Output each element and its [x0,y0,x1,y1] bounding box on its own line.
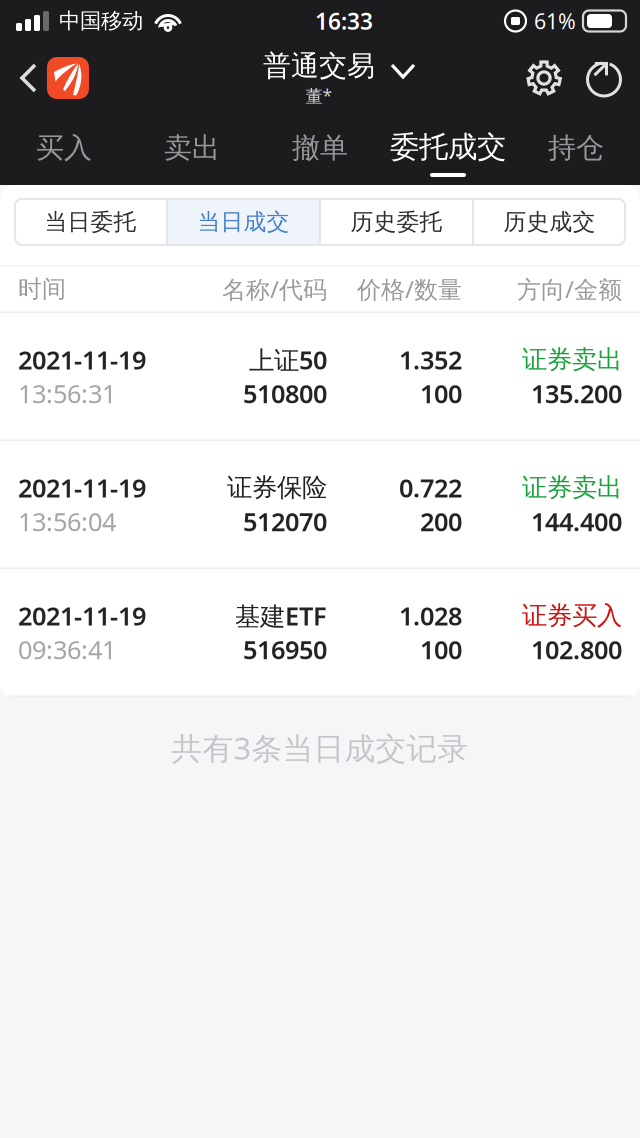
staticText: 当日成交 [197,208,289,236]
staticText: 2021-11-19 [18,599,146,632]
button[interactable]: 2021-11-19 [0,441,640,567]
button[interactable]: 2021-11-19 [0,569,640,695]
staticText: 中国移动 [59,8,143,34]
staticText: 100 [420,376,462,410]
staticText: 上证50 [249,343,327,376]
staticText: 基建ETF [235,599,327,632]
button[interactable]: 历史成交 [474,199,625,245]
button[interactable]: Back [0,42,99,114]
button[interactable]: 2021-11-19 [0,313,640,439]
staticText: 名称/代码 [222,273,327,305]
staticText: 撤单 [292,131,348,165]
staticText: 2021-11-19 [18,471,146,504]
staticText: 当日委托 [44,208,136,236]
staticText: 历史委托 [350,208,442,236]
staticText: 09:36:41 [18,632,116,666]
button[interactable]: 委托成交 [384,114,512,185]
staticText: 1.028 [399,599,462,632]
button[interactable]: Refresh [585,58,623,98]
staticText: 512070 [243,504,327,538]
staticText: 共有3条当日成交记录 [171,727,468,768]
staticText: 证券卖出 [522,472,622,503]
staticText: 时间 [18,274,66,304]
staticText: 方向/金额 [517,273,622,305]
staticText: 证券买入 [522,600,622,631]
staticText: 持仓 [548,131,604,165]
button[interactable]: 当日委托 [15,199,166,245]
button[interactable]: 普通交易 [235,42,405,114]
button[interactable]: 持仓 [512,114,640,185]
staticText: 1.352 [399,343,462,376]
button[interactable]: 卖出 [128,114,256,185]
button[interactable]: 历史委托 [321,199,472,245]
staticText: 13:56:04 [18,504,116,538]
button[interactable]: 当日成交 [168,199,319,245]
staticText: 61% [534,7,576,35]
staticText: 200 [420,504,462,538]
staticText: 510800 [243,376,327,410]
staticText: 0.722 [399,471,462,504]
staticText: 普通交易 [263,49,375,83]
staticText: 516950 [243,632,327,666]
staticText: 证券卖出 [522,344,622,375]
staticText: 董* [305,84,332,107]
staticText: 144.400 [531,504,622,538]
staticText: 16:33 [315,6,373,36]
staticText: 135.200 [531,376,622,410]
button[interactable]: Settings [525,59,563,97]
button[interactable]: 撤单 [256,114,384,185]
staticText: 证券保险 [227,472,327,503]
staticText: 买入 [36,131,92,165]
staticText: 价格/数量 [357,273,462,305]
staticText: 100 [420,632,462,666]
button[interactable]: 买入 [0,114,128,185]
staticText: 102.800 [531,632,622,666]
staticText: 2021-11-19 [18,343,146,376]
staticText: 13:56:31 [18,376,116,410]
staticText: 卖出 [164,131,220,165]
staticText: 历史成交 [503,208,595,236]
staticText: 委托成交 [390,129,506,165]
